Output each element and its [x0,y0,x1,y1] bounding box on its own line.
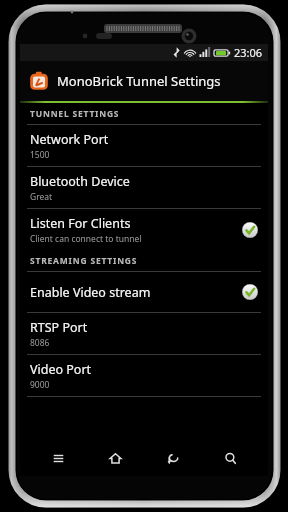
staticText: Enable Video stream [30,284,151,301]
staticText: Client can connect to tunnel [30,233,142,245]
staticText: Listen For Clients [30,215,131,232]
button[interactable]: Menu [38,443,78,473]
staticText: TUNNEL SETTINGS [30,108,120,120]
button[interactable]: Toggle enabled [242,222,258,238]
button[interactable]: Home [95,443,135,473]
staticText: 1500 [30,149,50,161]
button[interactable]: RTSP Port [20,313,268,354]
staticText: Great [30,191,53,203]
staticText: 23:06 [234,45,263,60]
staticText: 8086 [30,337,50,349]
button[interactable]: Toggle enabled [242,284,258,300]
staticText: Video Port [30,361,92,378]
staticText: Network Port [30,131,109,148]
button[interactable]: Back [153,443,193,473]
staticText: 9000 [30,379,50,391]
staticText: MonoBrick Tunnel Settings [57,72,221,90]
staticText: STREAMING SETTINGS [30,255,138,267]
staticText: Bluetooth Device [30,173,130,190]
button[interactable]: Video Port [20,355,268,396]
button[interactable]: Network Port [20,125,268,166]
staticText: RTSP Port [30,319,88,336]
button[interactable]: Bluetooth Device [20,167,268,208]
button[interactable]: Listen For Clients [20,209,268,250]
button[interactable]: Enable Video stream [20,272,268,312]
button[interactable]: Search [210,443,250,473]
